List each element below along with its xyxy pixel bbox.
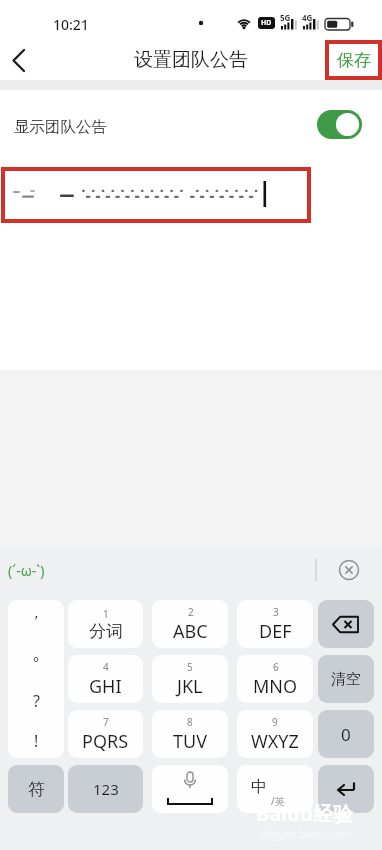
staticText: 分词 — [89, 621, 123, 642]
staticText: TUV — [173, 729, 207, 754]
staticText: 123 — [93, 779, 119, 799]
button[interactable]: 保存 — [325, 40, 382, 80]
button[interactable]: 9 — [237, 710, 313, 758]
staticText: 中 — [251, 777, 267, 797]
button[interactable] — [332, 553, 366, 587]
staticText: HD — [261, 18, 272, 28]
staticText: 4G — [302, 12, 313, 22]
button[interactable] — [318, 600, 374, 648]
button[interactable] — [1, 167, 311, 223]
staticText: JKL — [177, 674, 203, 699]
button[interactable]: 4 — [68, 655, 143, 703]
staticText: 4 — [103, 660, 109, 674]
button[interactable]: 123 — [68, 765, 143, 813]
staticText: 8 — [187, 715, 193, 729]
button[interactable]: 7 — [68, 710, 143, 758]
staticText: 保存 — [337, 50, 371, 71]
button[interactable]: 1 — [68, 600, 143, 648]
button[interactable]: 5 — [152, 655, 228, 703]
staticText: /英 — [271, 794, 285, 808]
staticText: DEF — [259, 619, 292, 644]
staticText: 9 — [272, 715, 278, 729]
staticText: 10:21 — [53, 15, 89, 34]
button[interactable]: 6 — [237, 655, 313, 703]
staticText: 设置团队公告 — [134, 48, 248, 72]
staticText: ° — [33, 653, 39, 672]
staticText: Baidu经验 — [256, 800, 353, 827]
button[interactable] — [4, 44, 38, 78]
button[interactable]: 符 — [8, 765, 64, 813]
staticText: MNO — [253, 674, 298, 699]
staticText: 清空 — [331, 670, 361, 689]
button[interactable] — [152, 765, 228, 813]
button[interactable]: 清空 — [318, 655, 374, 703]
staticText: ABC — [173, 619, 208, 644]
staticText: 5 — [187, 660, 193, 674]
staticText: 3 — [273, 605, 279, 619]
staticText: 6 — [273, 660, 279, 674]
button[interactable]: 显示团队公告 — [14, 117, 124, 137]
button[interactable]: (´-ω-`) — [8, 560, 64, 580]
button[interactable] — [237, 765, 313, 813]
staticText: 符 — [28, 779, 45, 800]
staticText: GHI — [89, 674, 122, 699]
staticText: 2 — [188, 605, 194, 619]
staticText: PQRS — [82, 729, 129, 754]
staticText: (´-ω-`) — [8, 561, 45, 580]
staticText: 1 — [103, 607, 109, 621]
button[interactable] — [313, 106, 366, 143]
staticText: 5G — [280, 12, 291, 22]
staticText: WXYZ — [251, 729, 299, 754]
button[interactable]: 2 — [152, 600, 228, 648]
button[interactable]: ’ — [8, 600, 64, 758]
staticText: ! — [34, 730, 39, 750]
staticText: 0 — [341, 723, 351, 746]
button[interactable]: 0 — [318, 710, 374, 758]
staticText: 显示团队公告 — [14, 117, 107, 137]
staticText: ’ — [35, 611, 38, 630]
button[interactable]: 8 — [152, 710, 228, 758]
button[interactable] — [318, 765, 374, 813]
button[interactable]: 3 — [237, 600, 313, 648]
staticText: 7 — [103, 715, 109, 729]
staticText: ? — [33, 690, 40, 710]
